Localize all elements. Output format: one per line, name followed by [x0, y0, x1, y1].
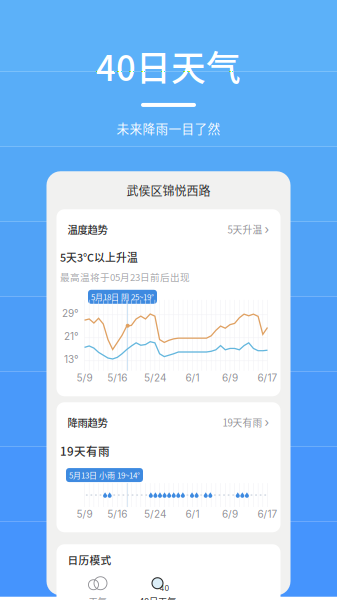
staticText: 5月18日 阴 25~19°: [91, 291, 154, 303]
staticText: 5/24: [144, 372, 166, 384]
staticText: 6/17: [257, 508, 277, 520]
staticText: 19天有雨: [60, 442, 110, 459]
staticText: 29°: [62, 307, 79, 319]
staticText: 最高温将于05月23日前后出现: [60, 270, 190, 284]
staticText: 40日天气: [96, 41, 241, 91]
staticText: 降雨趋势: [67, 415, 107, 430]
staticText: ›: [264, 222, 269, 236]
button[interactable]: 天气: [67, 576, 127, 600]
staticText: 5/9: [76, 372, 92, 384]
staticText: 13°: [64, 353, 79, 365]
staticText: 6/9: [222, 508, 238, 520]
staticText: 5/9: [76, 508, 92, 520]
staticText: 6/9: [222, 372, 238, 384]
staticText: 日历模式: [67, 552, 111, 567]
staticText: 5/16: [107, 508, 127, 520]
button[interactable]: 5天升温: [227, 222, 269, 236]
staticText: 21°: [64, 330, 79, 342]
staticText: 温度趋势: [67, 222, 107, 237]
staticText: 6/1: [185, 508, 199, 520]
staticText: ›: [264, 415, 269, 429]
staticText: 5天3°C以上升温: [60, 249, 138, 265]
staticText: 40日天气: [139, 594, 176, 600]
staticText: 5/24: [144, 508, 166, 520]
staticText: 未来降雨一目了然: [116, 119, 220, 137]
staticText: 5月13日 小雨 19~14°: [69, 469, 140, 481]
staticText: 天气: [88, 594, 106, 600]
staticText: 5天升温: [227, 222, 262, 236]
button[interactable]: 40: [127, 576, 187, 600]
staticText: 40: [159, 584, 169, 593]
staticText: 6/17: [257, 372, 277, 384]
staticText: 武侯区锦悦西路: [126, 182, 210, 199]
staticText: 6/1: [185, 372, 199, 384]
staticText: 19天有雨: [222, 415, 262, 429]
staticText: 5/16: [107, 372, 127, 384]
button[interactable]: 19天有雨: [222, 415, 269, 429]
